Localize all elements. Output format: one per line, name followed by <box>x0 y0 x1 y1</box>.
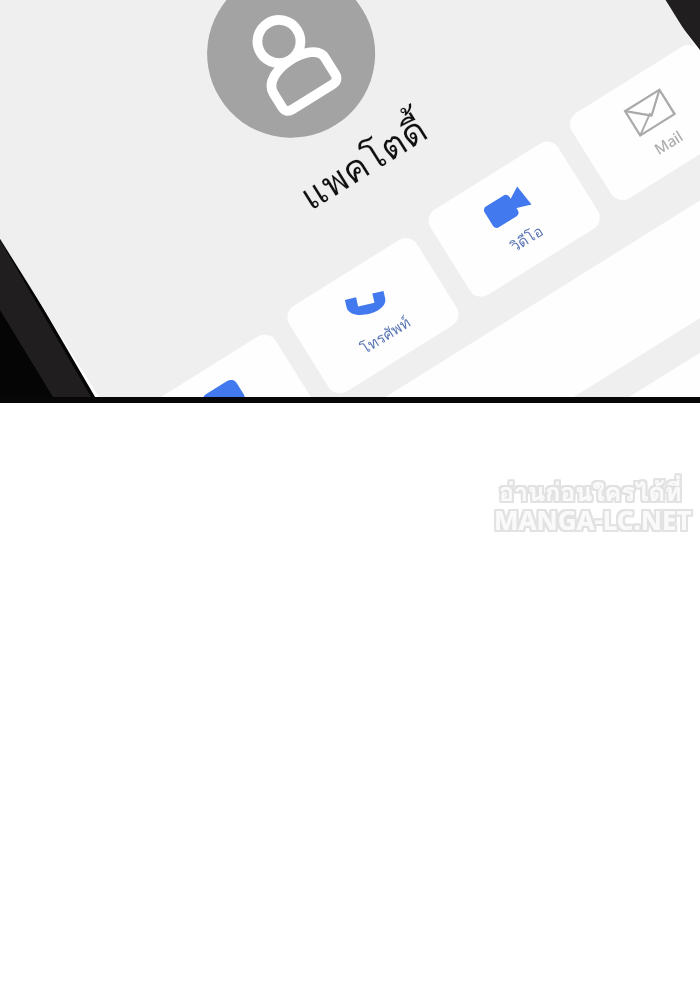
staticText: อ่านก่อนใครได้ที่ <box>497 472 680 512</box>
button[interactable] <box>273 284 700 746</box>
staticText: MANGA-LC.NET <box>492 502 690 537</box>
staticText: อ่านก่อนใครได้ที่ <box>499 470 682 510</box>
staticText: MANGA-LC.NET <box>496 504 694 539</box>
staticText: วิดีโอ <box>505 219 549 258</box>
staticText: MANGA-LC.NET <box>494 502 692 537</box>
button[interactable]: โทรศัพท์ <box>282 233 464 399</box>
staticText: อ่านก่อนใครได้ที่ <box>499 474 682 514</box>
button[interactable]: วิดีโอ <box>423 136 605 302</box>
staticText: โทรศัพท์ <box>356 310 416 360</box>
staticText: อ่านก่อนใครได้ที่ <box>501 470 684 510</box>
staticText: อ่านก่อนใครได้ที่ <box>501 474 684 514</box>
staticText: อ่านก่อนใครได้ที่ <box>501 472 684 512</box>
button[interactable]: ข้อความ <box>141 329 322 495</box>
button[interactable]: Mail <box>565 40 700 205</box>
staticText: MANGA-LC.NET <box>496 502 694 537</box>
button[interactable] <box>205 175 700 595</box>
staticText: MANGA-LC.NET <box>496 500 694 535</box>
staticText: MANGA-LC.NET <box>494 500 692 535</box>
staticText: Mail <box>650 126 686 159</box>
other: Contact photo <box>175 0 407 169</box>
staticText: MANGA-LC.NET <box>492 504 690 539</box>
staticText: อ่านก่อนใครได้ที่ <box>497 470 680 510</box>
staticText: MANGA-LC.NET <box>494 504 692 539</box>
staticText: อ่านก่อนใครได้ที่ <box>497 474 680 514</box>
staticText: อ่านก่อนใครได้ที่ <box>499 472 682 512</box>
staticText: แพคโตดี้ <box>288 100 439 225</box>
staticText: MANGA-LC.NET <box>492 500 690 535</box>
